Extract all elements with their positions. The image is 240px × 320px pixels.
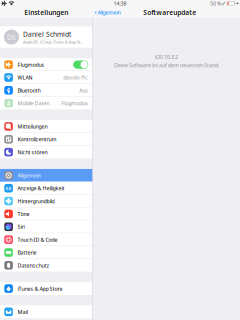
button[interactable]: Mail [0,305,92,318]
staticText: Deine Software ist auf dem neuesten Stan… [114,62,219,69]
staticText: Datenschutz [17,262,49,269]
button[interactable]: Flugmodus [0,58,92,71]
staticText: Allgemein [98,9,121,16]
button[interactable]: Mitteilungen [0,120,92,133]
staticText: Flugmodus [61,100,88,107]
staticText: Softwareupdate [143,8,196,17]
button[interactable]: DS [0,26,92,48]
staticText: Allgemein [17,172,40,179]
staticText: Mobile Daten [17,100,49,107]
staticText: Nicht stören [17,149,47,156]
staticText: WLAN [17,74,32,81]
button[interactable]: Allgemein [0,169,92,182]
staticText: Daniel Schmidt [23,30,71,39]
staticText: Einstellungen [24,8,68,17]
button[interactable]: WLAN [0,71,92,84]
staticText: Bluetooth [17,87,40,94]
button[interactable]: Mobile Daten [0,97,92,110]
button[interactable]: Nicht stören [0,146,92,158]
button[interactable]: AA [0,182,92,195]
staticText: AA [6,186,12,191]
staticText: Flugmodus [17,61,44,68]
button[interactable]: Kontrollzentrum [0,133,92,146]
staticText: Mitteilungen [17,123,47,130]
staticText: Töne [17,210,29,217]
button[interactable]: Allgemein [92,7,124,18]
button[interactable]: Touch ID & Code [0,233,92,246]
staticText: iOS 10.3.2 [155,53,178,61]
staticText: Apple-ID, iCloud, iTunes & App St… [23,39,83,44]
button[interactable]: Datenschutz [0,259,92,272]
button[interactable]: Batterie [0,246,92,259]
button[interactable]: Hintergrundbild [0,195,92,207]
staticText: Siri [17,223,24,230]
staticText: iTunes & App Store [17,285,62,292]
button[interactable]: Töne [0,207,92,220]
staticText: Mail [17,308,27,315]
staticText: Batterie [17,249,36,256]
staticText: Aus [79,87,88,94]
staticText: 50 % [210,0,221,7]
staticText: devolo-ffc [63,74,88,81]
button[interactable]: Siri [0,220,92,233]
button[interactable]: Bluetooth [0,84,92,97]
staticText: Kontrollzentrum [17,136,56,143]
button[interactable]: iTunes & App Store [0,282,92,295]
staticText: Hintergrundbild [17,197,54,205]
staticText: Touch ID & Code [17,236,57,243]
staticText: 14:38 [113,0,126,7]
staticText: Anzeige & Helligkeit [17,185,64,192]
staticText: DS [7,33,16,42]
